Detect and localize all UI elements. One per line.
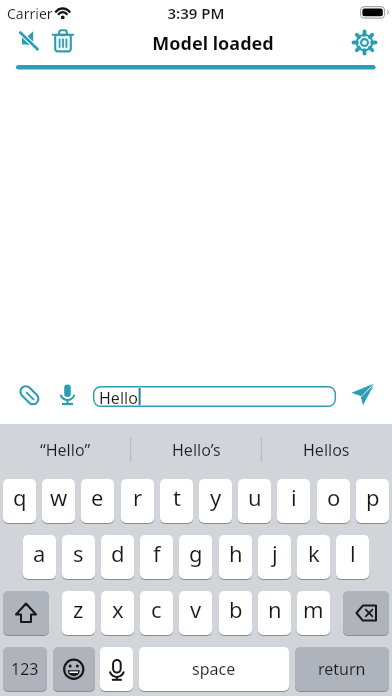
staticText: k bbox=[308, 538, 320, 568]
button[interactable] bbox=[100, 647, 133, 691]
button[interactable]: return bbox=[295, 647, 389, 691]
button[interactable]: d bbox=[101, 535, 134, 579]
button[interactable]: k bbox=[297, 535, 330, 579]
button[interactable]: r bbox=[121, 479, 154, 523]
button[interactable] bbox=[350, 28, 379, 57]
button[interactable] bbox=[17, 383, 42, 408]
staticText: w bbox=[50, 482, 68, 512]
staticText: q bbox=[13, 482, 27, 512]
button[interactable]: b bbox=[219, 591, 252, 635]
staticText: m bbox=[303, 594, 324, 624]
staticText: y bbox=[210, 482, 222, 512]
staticText: d bbox=[111, 538, 125, 568]
staticText: s bbox=[73, 538, 84, 568]
staticText: f bbox=[153, 538, 161, 568]
button[interactable]: l bbox=[336, 535, 369, 579]
button[interactable]: m bbox=[297, 591, 330, 635]
staticText: h bbox=[229, 538, 243, 568]
button[interactable]: p bbox=[356, 479, 389, 523]
staticText: space bbox=[192, 658, 236, 680]
button[interactable]: z bbox=[62, 591, 95, 635]
button[interactable]: 123 bbox=[3, 647, 47, 691]
button[interactable]: i bbox=[277, 479, 310, 523]
button[interactable] bbox=[343, 591, 389, 635]
staticText: e bbox=[91, 482, 104, 512]
button[interactable]: y bbox=[199, 479, 232, 523]
button[interactable]: n bbox=[258, 591, 291, 635]
staticText: Carrier bbox=[7, 4, 53, 23]
button[interactable]: space bbox=[139, 647, 289, 691]
button[interactable]: q bbox=[3, 479, 36, 523]
staticText: j bbox=[272, 538, 278, 568]
button[interactable]: w bbox=[42, 479, 75, 523]
button[interactable] bbox=[348, 380, 378, 409]
staticText: a bbox=[33, 538, 46, 568]
staticText: u bbox=[248, 482, 262, 512]
button[interactable]: v bbox=[179, 591, 212, 635]
staticText: return bbox=[318, 658, 366, 680]
staticText: i bbox=[291, 482, 297, 512]
staticText: 3:39 PM bbox=[0, 3, 392, 23]
button[interactable]: e bbox=[81, 479, 114, 523]
button[interactable]: u bbox=[238, 479, 271, 523]
button[interactable]: g bbox=[179, 535, 212, 579]
button[interactable]: f bbox=[140, 535, 173, 579]
button[interactable]: Hello bbox=[93, 386, 336, 407]
button[interactable]: “Hello” bbox=[40, 439, 91, 461]
staticText: b bbox=[229, 594, 243, 624]
staticText: g bbox=[189, 538, 203, 568]
button[interactable]: t bbox=[160, 479, 193, 523]
staticText: 123 bbox=[11, 658, 39, 680]
button[interactable] bbox=[57, 383, 78, 407]
staticText: o bbox=[327, 482, 341, 512]
button[interactable]: Hellos bbox=[303, 439, 350, 461]
staticText: l bbox=[350, 538, 356, 568]
button[interactable] bbox=[53, 647, 95, 691]
button[interactable] bbox=[14, 27, 44, 56]
staticText: Model loaded bbox=[63, 31, 363, 56]
button[interactable]: x bbox=[101, 591, 134, 635]
staticText: c bbox=[151, 594, 162, 624]
button[interactable]: j bbox=[258, 535, 291, 579]
staticText: z bbox=[73, 594, 84, 624]
staticText: t bbox=[173, 482, 181, 512]
staticText: x bbox=[112, 594, 124, 624]
button[interactable] bbox=[51, 28, 75, 54]
button[interactable]: Hello’s bbox=[172, 439, 221, 461]
staticText: r bbox=[133, 482, 143, 512]
button[interactable]: c bbox=[140, 591, 173, 635]
button[interactable]: a bbox=[23, 535, 56, 579]
staticText: p bbox=[366, 482, 380, 512]
button[interactable]: h bbox=[219, 535, 252, 579]
button[interactable]: s bbox=[62, 535, 95, 579]
button[interactable]: o bbox=[317, 479, 350, 523]
staticText: Hello bbox=[99, 387, 138, 408]
staticText: n bbox=[268, 594, 282, 624]
button[interactable] bbox=[3, 591, 49, 635]
staticText: v bbox=[190, 594, 202, 624]
